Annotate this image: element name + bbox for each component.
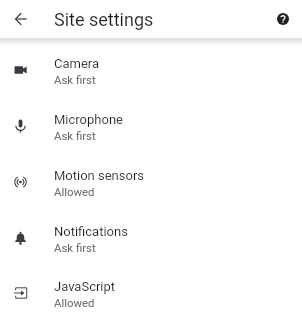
staticText: Notifications	[54, 224, 128, 239]
staticText: Allowed	[54, 185, 95, 198]
button[interactable]: JavaScript	[0, 267, 302, 320]
staticText: Ask first	[54, 73, 96, 86]
staticText: Allowed	[54, 296, 95, 309]
staticText: Motion sensors	[54, 168, 145, 183]
staticText: Camera	[54, 56, 100, 71]
button[interactable]: Back	[0, 0, 38, 38]
staticText: Site settings	[54, 9, 154, 30]
staticText: Microphone	[54, 112, 123, 127]
staticText: Ask first	[54, 241, 96, 254]
button[interactable]: Motion sensors	[0, 155, 302, 211]
staticText: JavaScript	[54, 279, 116, 294]
button[interactable]: Help	[264, 0, 302, 38]
button[interactable]: Notifications	[0, 211, 302, 267]
button[interactable]: Microphone	[0, 99, 302, 155]
staticText: Ask first	[54, 129, 96, 142]
button[interactable]: Camera	[0, 43, 302, 99]
